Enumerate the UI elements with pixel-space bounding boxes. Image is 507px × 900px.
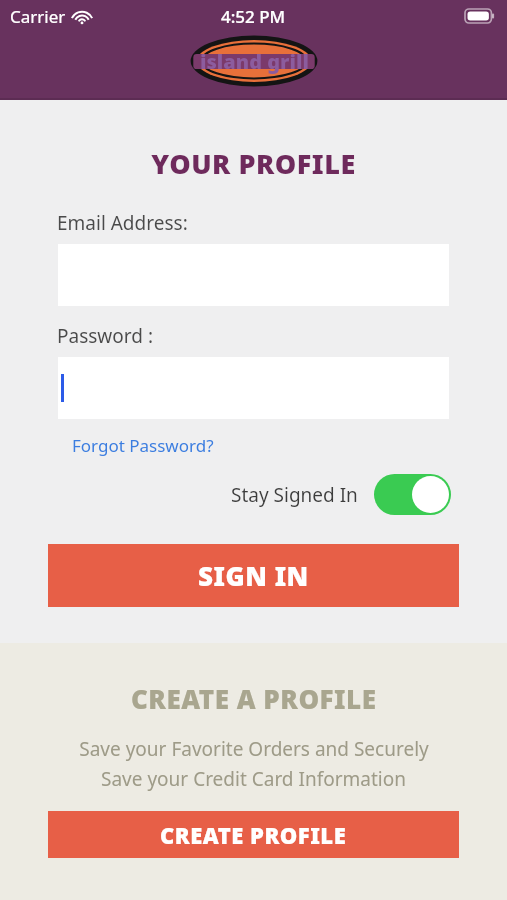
staticText: Save your Favorite Orders and Securely [79, 736, 429, 762]
staticText: Password : [57, 323, 153, 349]
button[interactable]: SIGN IN [48, 544, 459, 607]
button[interactable] [58, 357, 449, 419]
staticText: Save your Credit Card Information [101, 766, 406, 792]
staticText: Forgot Password? [72, 434, 214, 457]
staticText: CREATE PROFILE [160, 820, 347, 850]
staticText: Carrier [10, 5, 66, 28]
button[interactable]: Stay Signed In [231, 474, 451, 515]
staticText: Email Address: [57, 210, 188, 236]
staticText: island grill [200, 48, 309, 75]
staticText: 4:52 PM [221, 5, 286, 28]
staticText: Stay Signed In [231, 482, 358, 508]
staticText: SIGN IN [198, 558, 309, 593]
button[interactable]: CREATE PROFILE [48, 811, 459, 858]
staticText: YOUR PROFILE [0, 145, 507, 182]
other: Island Grill logo [188, 32, 320, 90]
button[interactable]: Forgot Password? [72, 434, 214, 457]
staticText: CREATE A PROFILE [131, 681, 377, 716]
